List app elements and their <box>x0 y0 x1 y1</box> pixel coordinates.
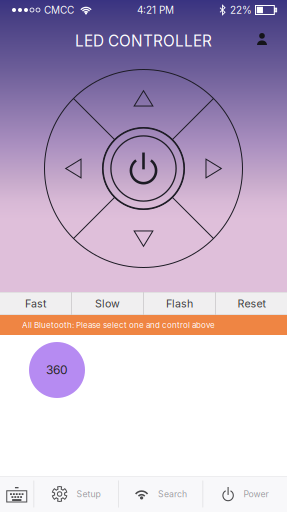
button[interactable]: Power <box>203 476 287 512</box>
staticText: Power <box>244 489 269 499</box>
staticText: Setup <box>77 489 101 499</box>
staticText: 360 <box>46 363 68 377</box>
button[interactable]: Slow <box>72 292 143 314</box>
button[interactable]: Setup <box>34 476 118 512</box>
button[interactable]: Account <box>241 22 287 56</box>
staticText: Search <box>158 489 187 499</box>
staticText: CMCC <box>44 4 74 16</box>
button[interactable]: Keyboard <box>0 476 33 512</box>
staticText: Fast <box>25 297 46 310</box>
staticText: LED CONTROLLER <box>75 32 212 50</box>
button[interactable]: Flash <box>144 292 215 314</box>
button[interactable]: 360 <box>0 335 85 398</box>
staticText: Flash <box>166 297 193 310</box>
staticText: Reset <box>237 297 265 310</box>
staticText: Slow <box>95 297 120 310</box>
staticText: All Bluetooth: Please select one and con… <box>22 320 215 330</box>
button[interactable]: Search <box>119 476 202 512</box>
button[interactable]: Power <box>102 127 184 209</box>
button[interactable]: Fast <box>0 292 71 314</box>
staticText: 4:21 PM <box>137 4 174 16</box>
button[interactable]: Reset <box>216 292 287 314</box>
staticText: 22% <box>230 4 252 16</box>
